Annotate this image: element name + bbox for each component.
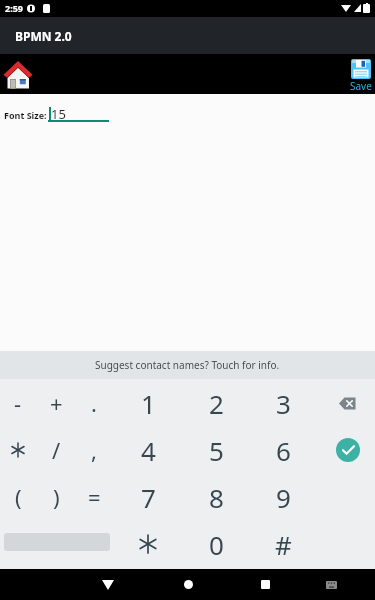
button[interactable]: ): [37, 474, 75, 520]
staticText: 6: [276, 433, 291, 468]
staticText: +: [50, 388, 63, 418]
staticText: .: [91, 388, 97, 418]
button[interactable]: =: [75, 474, 113, 520]
button[interactable]: 0: [184, 521, 248, 567]
staticText: 8: [209, 480, 224, 515]
button[interactable]: [250, 569, 280, 600]
button[interactable]: +: [37, 380, 75, 426]
staticText: (: [15, 482, 22, 512]
staticText: 15: [51, 105, 66, 122]
button[interactable]: .: [75, 380, 113, 426]
button[interactable]: (: [0, 474, 37, 520]
staticText: 2:59: [5, 2, 23, 14]
button[interactable]: Save: [350, 59, 372, 93]
button[interactable]: #: [251, 521, 315, 567]
staticText: ): [53, 482, 60, 512]
staticText: =: [88, 482, 101, 512]
button[interactable]: 2: [184, 380, 248, 426]
button[interactable]: [5, 61, 33, 89]
staticText: Suggest contact names? Touch for info.: [95, 358, 280, 372]
staticText: 1: [141, 386, 156, 421]
button[interactable]: 7: [116, 474, 180, 520]
staticText: /: [52, 435, 61, 465]
staticText: 7: [141, 480, 156, 515]
button[interactable]: [326, 380, 370, 426]
button[interactable]: 1: [116, 380, 180, 426]
button[interactable]: ,: [75, 427, 113, 473]
staticText: #: [275, 527, 292, 562]
button[interactable]: 3: [251, 380, 315, 426]
button[interactable]: 8: [184, 474, 248, 520]
staticText: Save: [350, 79, 372, 93]
staticText: ,: [91, 435, 97, 465]
button[interactable]: [173, 569, 203, 600]
button[interactable]: 4: [116, 427, 180, 473]
staticText: 5: [209, 433, 224, 468]
button[interactable]: 6: [251, 427, 315, 473]
button[interactable]: [0, 427, 37, 473]
staticText: 9: [276, 480, 291, 515]
button[interactable]: 9: [251, 474, 315, 520]
button[interactable]: [318, 569, 344, 600]
staticText: BPMN 2.0: [15, 28, 72, 44]
staticText: 4: [141, 433, 156, 468]
staticText: Font Size:: [4, 109, 47, 121]
staticText: 3: [276, 386, 291, 421]
button[interactable]: [326, 427, 370, 473]
staticText: 2: [209, 386, 224, 421]
staticText: -: [14, 388, 22, 418]
button[interactable]: 5: [184, 427, 248, 473]
button[interactable]: /: [37, 427, 75, 473]
button[interactable]: [116, 521, 180, 567]
button[interactable]: [93, 569, 123, 600]
button[interactable]: 15: [48, 105, 110, 122]
staticText: 0: [209, 527, 224, 562]
button[interactable]: -: [0, 380, 37, 426]
